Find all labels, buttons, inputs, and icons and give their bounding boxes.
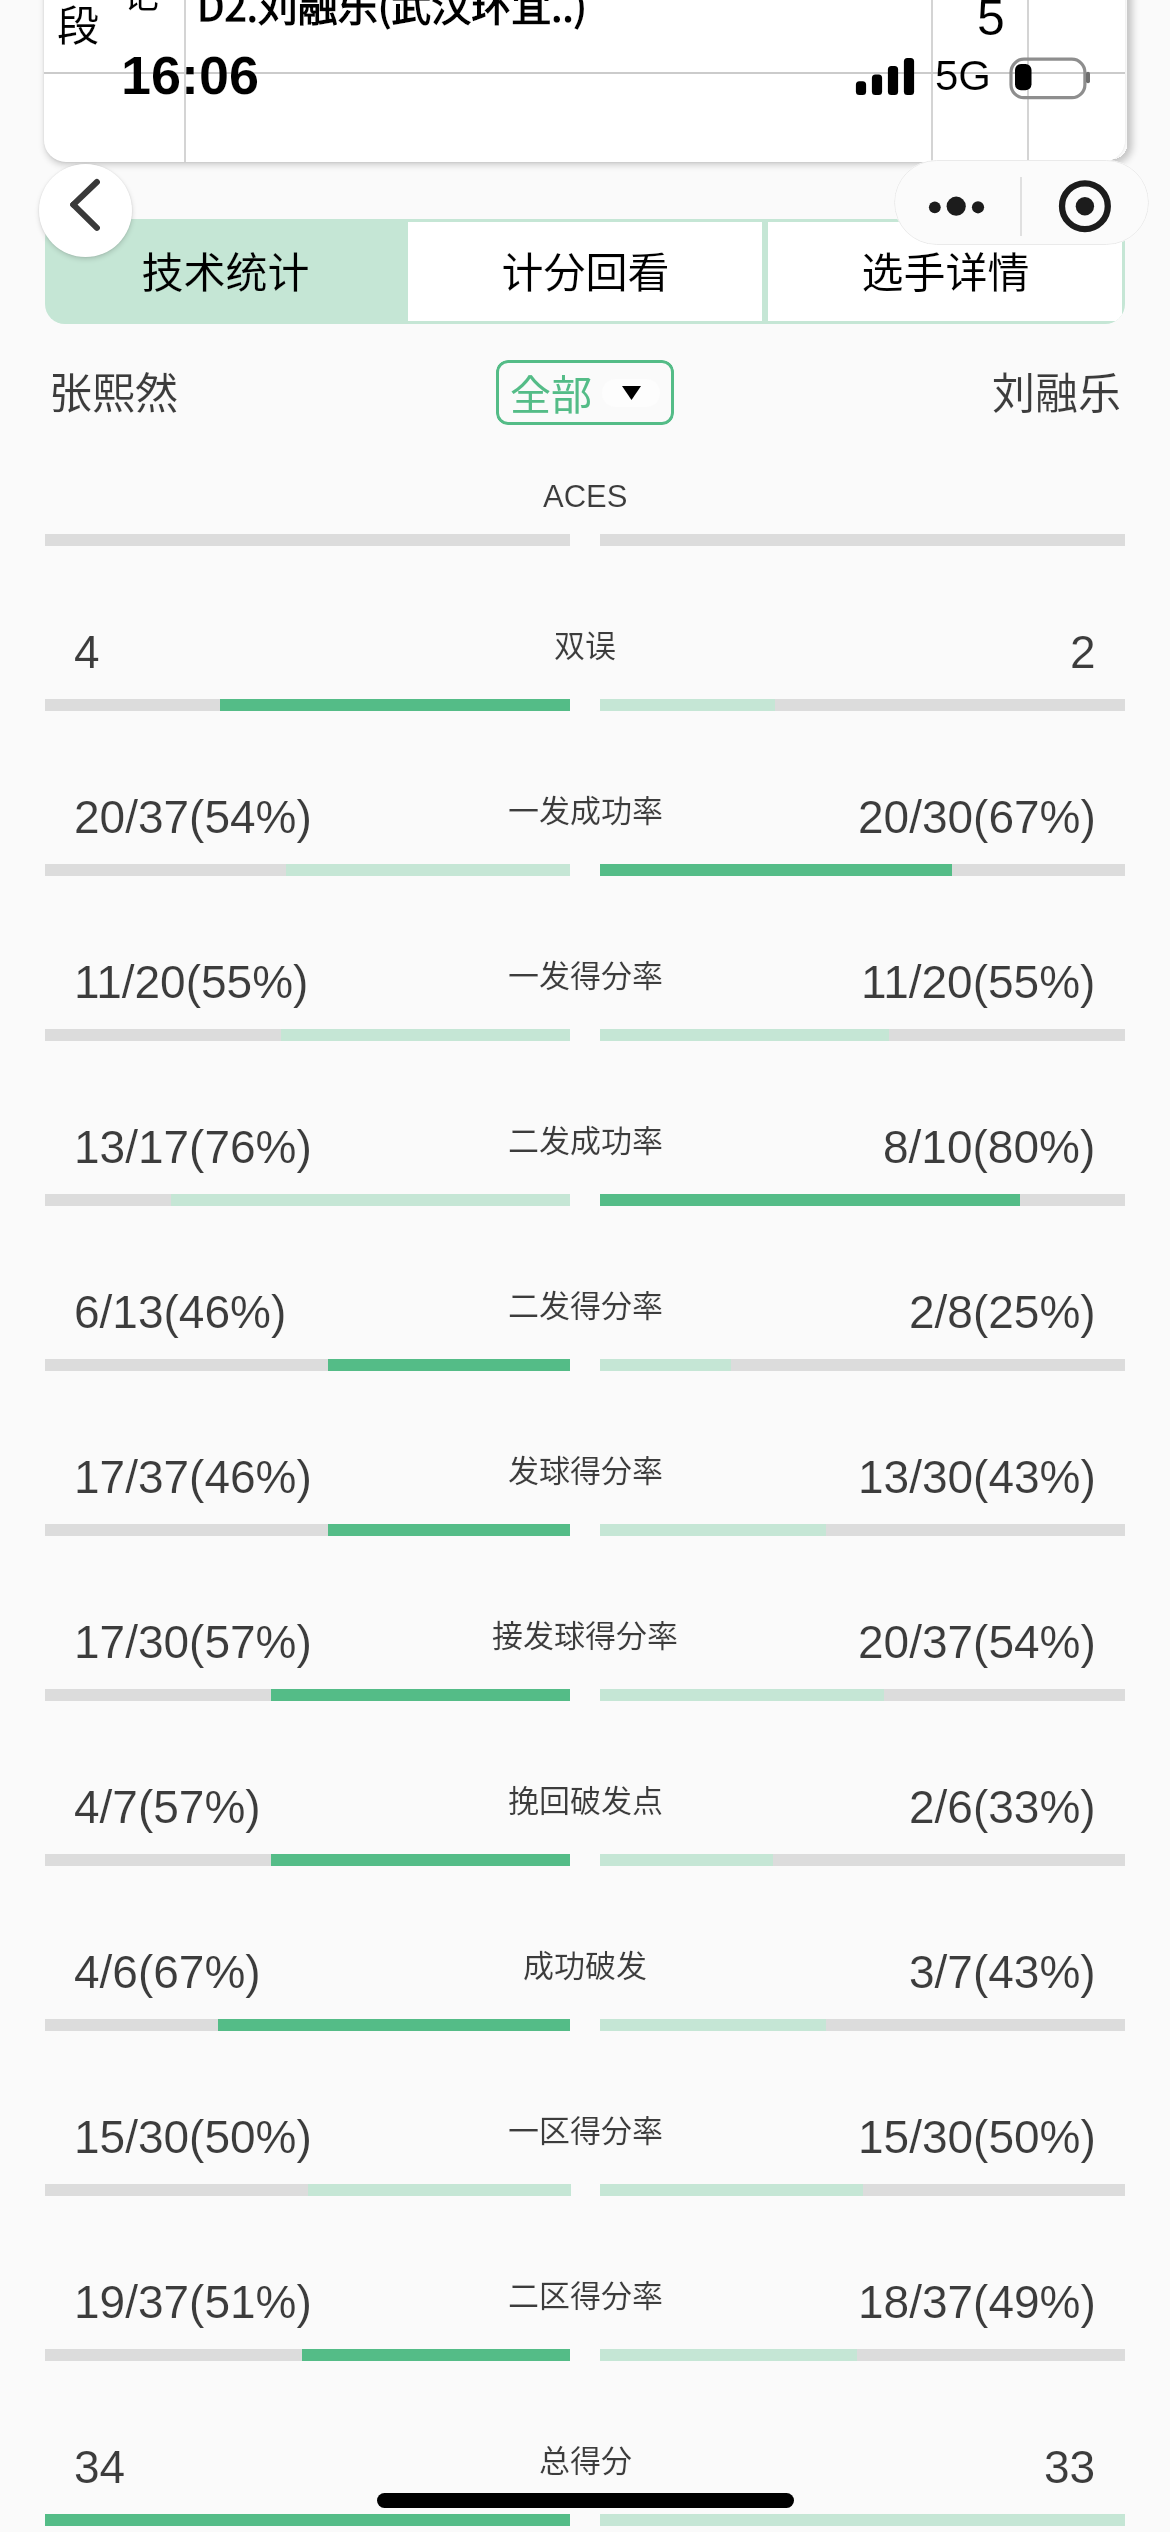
staticText: 二区得分率 <box>508 2271 663 2316</box>
staticText: 19/37(51%) <box>74 2276 312 2327</box>
staticText: 15/30(50%) <box>858 2111 1096 2162</box>
staticText: 18/37(49%) <box>858 2276 1096 2327</box>
staticText: 接发球得分率 <box>492 1611 678 1656</box>
staticText: 2/6(33%) <box>909 1781 1096 1832</box>
staticText: 15/30(50%) <box>74 2111 312 2162</box>
button[interactable]: 全部 <box>496 360 674 425</box>
staticText: 5G <box>935 52 992 99</box>
staticText: 13/30(43%) <box>858 1451 1096 1502</box>
staticText: 17/37(46%) <box>74 1451 312 1502</box>
staticText: 20/37(54%) <box>74 791 312 842</box>
staticText: 计分回看 <box>501 239 670 300</box>
staticText: 8/10(80%) <box>883 1121 1096 1172</box>
staticText: 总得分 <box>539 2436 632 2481</box>
staticText: D2.刘融乐(武汉环宜..) <box>197 0 588 33</box>
staticText: 4/7(57%) <box>74 1781 261 1832</box>
staticText: 记 <box>123 0 160 18</box>
staticText: 4/6(67%) <box>74 1946 261 1997</box>
staticText: 11/20(55%) <box>74 956 309 1007</box>
staticText: 一区得分率 <box>508 2106 663 2151</box>
button[interactable]: 选手详情 <box>768 222 1122 321</box>
staticText: 选手详情 <box>861 239 1030 300</box>
staticText: 2/8(25%) <box>909 1286 1096 1337</box>
staticText: 双误 <box>554 621 616 666</box>
staticText: 一发成功率 <box>508 786 663 831</box>
staticText: 二发得分率 <box>508 1281 663 1326</box>
staticText: 3/7(43%) <box>909 1946 1096 1997</box>
staticText: 全部 <box>510 362 592 421</box>
button[interactable]: 技术统计 <box>45 219 405 324</box>
staticText: 11/20(55%) <box>861 956 1096 1007</box>
staticText: 刘融乐 <box>992 359 1121 421</box>
staticText: 4 <box>74 626 100 677</box>
staticText: 一发得分率 <box>508 951 663 996</box>
button[interactable]: Back <box>39 164 132 257</box>
staticText: ACES <box>543 479 628 514</box>
staticText: 发球得分率 <box>508 1446 663 1491</box>
staticText: 20/30(67%) <box>858 791 1096 842</box>
button[interactable]: More options <box>894 160 1021 245</box>
staticText: 2 <box>1070 626 1096 677</box>
staticText: 段 <box>57 0 100 53</box>
staticText: 33 <box>1044 2441 1096 2492</box>
staticText: 挽回破发点 <box>508 1776 663 1821</box>
button[interactable]: 计分回看 <box>408 222 762 321</box>
staticText: 张熙然 <box>49 359 178 421</box>
staticText: 20/37(54%) <box>858 1616 1096 1667</box>
staticText: 技术统计 <box>141 239 310 300</box>
staticText: 二发成功率 <box>508 1116 663 1161</box>
staticText: 13/17(76%) <box>74 1121 312 1172</box>
staticText: 5 <box>977 0 1005 46</box>
staticText: 17/30(57%) <box>74 1616 312 1667</box>
staticText: 6/13(46%) <box>74 1286 287 1337</box>
staticText: 34 <box>74 2441 126 2492</box>
staticText: 16:06 <box>121 45 260 105</box>
staticText: 成功破发 <box>523 1941 647 1986</box>
button[interactable]: Close mini program <box>1022 160 1149 245</box>
